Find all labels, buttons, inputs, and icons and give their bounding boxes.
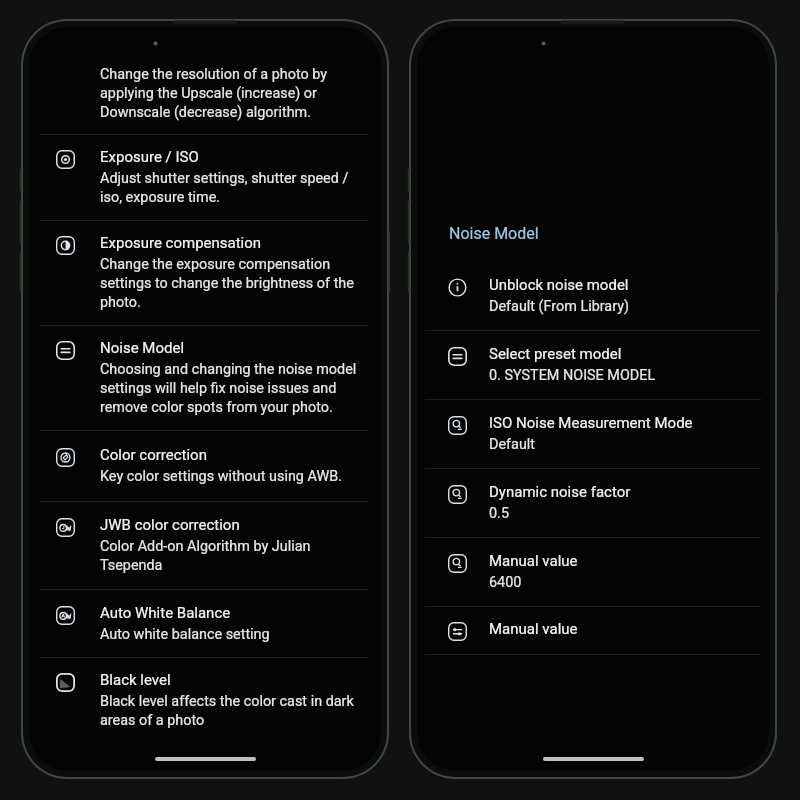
staticText: Black level bbox=[100, 671, 171, 689]
staticText: Change the exposure compensation setting… bbox=[100, 256, 367, 311]
button[interactable]: Auto White Balance bbox=[29, 590, 381, 657]
staticText: Color Add-on Algorithm by Julian Tsepend… bbox=[100, 538, 367, 574]
button[interactable]: Noise Model bbox=[29, 326, 381, 430]
button[interactable]: Manual value bbox=[417, 538, 769, 606]
staticText: 0. SYSTEM NOISE MODEL bbox=[489, 367, 656, 384]
staticText: 6400 bbox=[489, 574, 522, 591]
button[interactable]: Unblock noise model bbox=[417, 262, 769, 330]
staticText: Select preset model bbox=[489, 345, 622, 363]
button[interactable]: Exposure compensation bbox=[29, 221, 381, 325]
button[interactable]: JWB color correction bbox=[29, 502, 381, 589]
staticText: Exposure / ISO bbox=[100, 148, 199, 166]
staticText: Change the resolution of a photo by appl… bbox=[100, 66, 364, 121]
staticText: Auto White Balance bbox=[100, 604, 231, 622]
staticText: Manual value bbox=[489, 620, 578, 638]
staticText: Choosing and changing the noise model se… bbox=[100, 361, 367, 416]
staticText: Default bbox=[489, 436, 536, 453]
staticText: Exposure compensation bbox=[100, 234, 262, 252]
button[interactable]: ISO Noise Measurement Mode bbox=[417, 400, 769, 468]
staticText: Noise Model bbox=[449, 224, 539, 243]
staticText: Noise Model bbox=[100, 339, 185, 357]
staticText: ISO Noise Measurement Mode bbox=[489, 414, 693, 432]
staticText: Black level affects the color cast in da… bbox=[100, 693, 367, 729]
staticText: Key color settings without using AWB. bbox=[100, 468, 342, 485]
button[interactable]: Dynamic noise factor bbox=[417, 469, 769, 537]
button[interactable]: Manual value bbox=[417, 607, 769, 654]
staticText: Adjust shutter settings, shutter speed /… bbox=[100, 170, 367, 206]
staticText: Default (From Library) bbox=[489, 298, 630, 315]
button[interactable]: Color correction bbox=[29, 431, 381, 501]
staticText: JWB color correction bbox=[100, 516, 240, 534]
staticText: Unblock noise model bbox=[489, 276, 629, 294]
staticText: Manual value bbox=[489, 552, 578, 570]
staticText: 0.5 bbox=[489, 505, 509, 522]
staticText: Dynamic noise factor bbox=[489, 483, 631, 501]
button[interactable]: Black level bbox=[29, 658, 381, 743]
staticText: Color correction bbox=[100, 446, 207, 464]
button[interactable]: Exposure / ISO bbox=[29, 135, 381, 220]
staticText: Auto white balance setting bbox=[100, 626, 270, 643]
button[interactable]: Select preset model bbox=[417, 331, 769, 399]
